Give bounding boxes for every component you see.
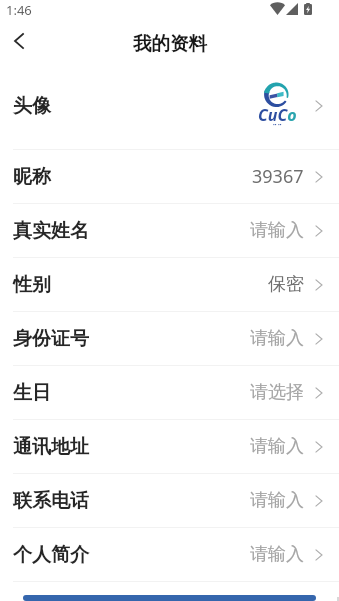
button[interactable]: 生日 <box>0 366 339 419</box>
button[interactable]: 保存 <box>23 595 316 601</box>
staticText: CuCo <box>258 104 297 126</box>
staticText: 我的资料 <box>133 32 207 55</box>
staticText: 1:46 <box>6 1 32 19</box>
button[interactable]: 性别 <box>0 258 339 311</box>
staticText: 请输入 <box>250 327 304 350</box>
button[interactable]: 头像 <box>0 63 339 149</box>
staticText: 39367 <box>252 164 304 189</box>
staticText: ·· ·· <box>273 121 282 129</box>
staticText: 联系电话 <box>13 489 89 513</box>
button[interactable]: 身份证号 <box>0 312 339 365</box>
button[interactable]: 个人简介 <box>0 528 339 581</box>
staticText: 请输入 <box>250 489 304 512</box>
button[interactable]: 昵称 <box>0 150 339 203</box>
staticText: 保密 <box>268 273 304 296</box>
staticText: 请输入 <box>250 435 304 458</box>
staticText: 通讯地址 <box>13 435 89 459</box>
button[interactable]: 真实姓名 <box>0 204 339 257</box>
staticText: 请输入 <box>250 219 304 242</box>
button[interactable]: 通讯地址 <box>0 420 339 473</box>
button[interactable]: Back <box>0 25 37 63</box>
staticText: 生日 <box>13 381 51 405</box>
staticText: 真实姓名 <box>13 219 89 243</box>
button[interactable]: 联系电话 <box>0 474 339 527</box>
staticText: 头像 <box>13 94 51 118</box>
staticText: 性别 <box>13 273 51 297</box>
staticText: 请输入 <box>250 543 304 566</box>
staticText: 请选择 <box>250 381 304 404</box>
staticText: 昵称 <box>13 165 51 189</box>
staticText: 个人简介 <box>13 543 89 567</box>
staticText: 身份证号 <box>13 327 89 351</box>
